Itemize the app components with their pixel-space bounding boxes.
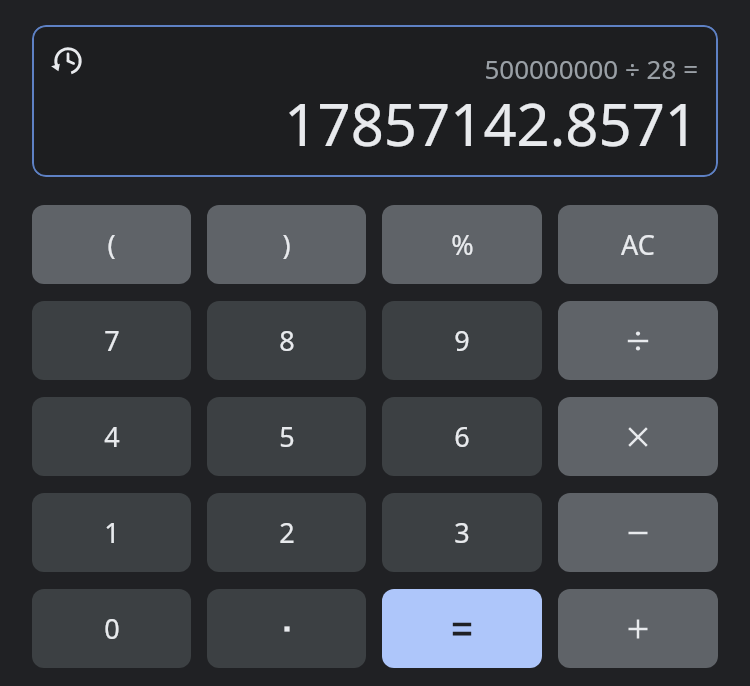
button[interactable]: (	[32, 205, 191, 284]
button[interactable]: Multiply	[558, 397, 718, 476]
button[interactable]: 3	[382, 493, 542, 572]
button[interactable]: Decimal point	[207, 589, 366, 668]
button[interactable]: 8	[207, 301, 366, 380]
staticText: %	[451, 226, 474, 263]
button[interactable]: Equals	[382, 589, 542, 668]
staticText: 17857142.8571	[284, 84, 698, 163]
staticText: 500000000 ÷ 28 =	[484, 51, 698, 86]
staticText: 2	[279, 514, 295, 551]
button[interactable]: 0	[32, 589, 191, 668]
button[interactable]: 1	[32, 493, 191, 572]
button[interactable]: 9	[382, 301, 542, 380]
staticText: )	[282, 226, 291, 263]
button[interactable]: 5	[207, 397, 366, 476]
button[interactable]: Subtract	[558, 493, 718, 572]
button[interactable]: Divide	[558, 301, 718, 380]
staticText: 3	[454, 514, 470, 551]
staticText: 7	[104, 322, 120, 359]
button[interactable]: 4	[32, 397, 191, 476]
button[interactable]: 6	[382, 397, 542, 476]
staticText: 9	[454, 322, 470, 359]
staticText: 6	[454, 418, 470, 455]
button[interactable]: )	[207, 205, 366, 284]
staticText: 8	[279, 322, 295, 359]
staticText: 4	[104, 418, 120, 455]
button[interactable]: AC	[558, 205, 718, 284]
staticText: 0	[104, 610, 120, 647]
staticText: 1	[104, 514, 120, 551]
button[interactable]: History	[48, 41, 88, 81]
button[interactable]: Add	[558, 589, 718, 668]
staticText: 5	[279, 418, 295, 455]
button[interactable]: 7	[32, 301, 191, 380]
staticText: (	[107, 226, 116, 263]
button[interactable]: History	[32, 25, 718, 177]
button[interactable]: 2	[207, 493, 366, 572]
staticText: AC	[621, 226, 655, 263]
button[interactable]: %	[382, 205, 542, 284]
